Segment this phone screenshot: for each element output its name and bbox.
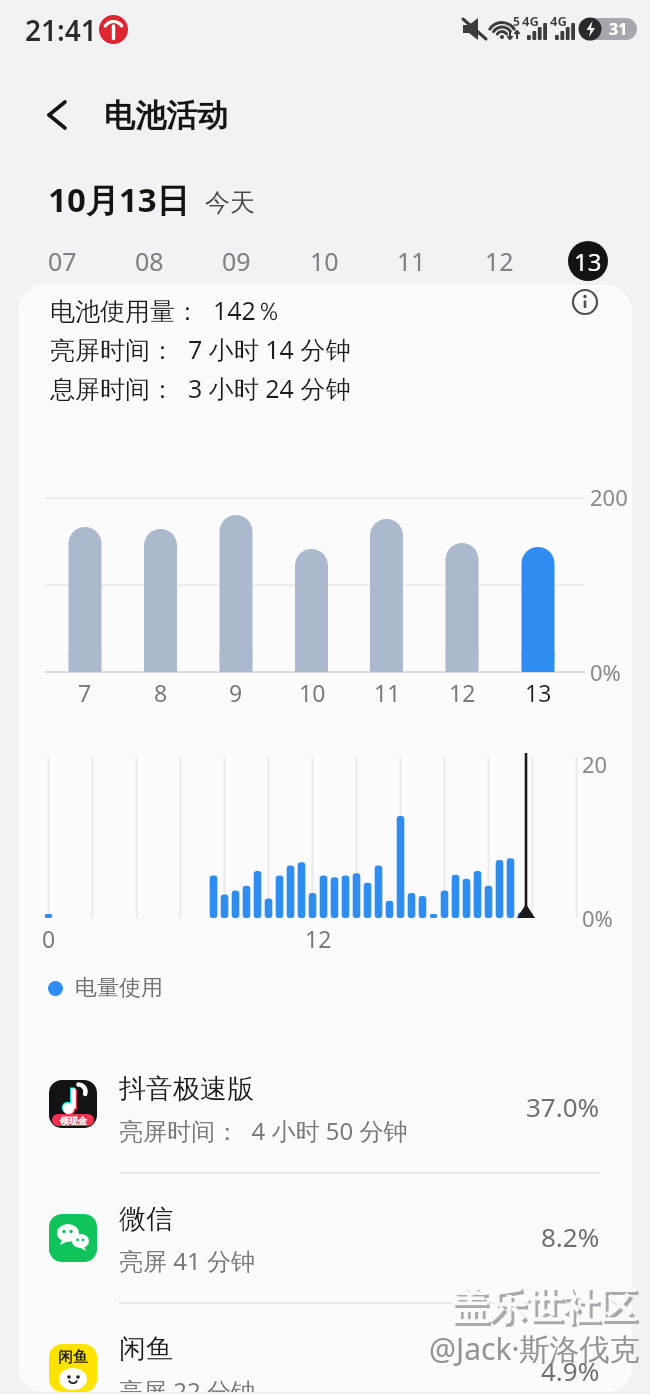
staticText: 息屏时间： 3 小时 24 分钟 <box>50 371 351 405</box>
staticText: 电池使用量： 142％ <box>50 293 281 327</box>
staticText: 电池活动 <box>104 96 228 135</box>
staticText: 0% <box>590 657 621 687</box>
staticText: 10 <box>310 244 339 278</box>
staticText: 0 <box>42 923 56 954</box>
button[interactable]: 12 <box>472 237 526 285</box>
button[interactable] <box>18 1043 632 1172</box>
staticText: 31 <box>609 18 628 40</box>
staticText: 亮屏时间： 4 小时 50 分钟 <box>119 1114 408 1147</box>
staticText: 9 <box>229 677 243 708</box>
staticText: 0% <box>582 903 613 933</box>
staticText: 电量使用 <box>75 974 163 1002</box>
staticText: 4G <box>550 12 567 30</box>
staticText: 09 <box>222 244 251 278</box>
button[interactable] <box>34 91 82 139</box>
button[interactable] <box>18 1172 632 1302</box>
staticText: 领现金 <box>60 1115 87 1126</box>
staticText: 12 <box>485 244 514 278</box>
staticText: 盖乐世社区 <box>454 1286 639 1333</box>
button[interactable]: 13 <box>568 241 608 281</box>
staticText: 37.0% <box>526 1089 600 1124</box>
staticText: 抖音极速版 <box>119 1072 254 1106</box>
staticText: 21:41 <box>25 11 97 49</box>
button[interactable]: 11 <box>384 237 438 285</box>
staticText: 亮屏时间： 7 小时 14 分钟 <box>50 332 351 366</box>
button[interactable]: 09 <box>209 237 263 285</box>
staticText: 08 <box>135 244 164 278</box>
staticText: 今天 <box>205 187 255 218</box>
staticText: 4G <box>522 12 539 30</box>
staticText: 8.2% <box>541 1219 600 1254</box>
staticText: 10 <box>299 677 326 708</box>
button[interactable]: 10 <box>297 237 351 285</box>
staticText: 亮屏 41 分钟 <box>119 1244 255 1277</box>
staticText: 盖乐世社区 <box>451 1283 636 1330</box>
staticText: 5 <box>513 13 520 29</box>
staticText: 4.9% <box>541 1353 600 1388</box>
staticText: 闲鱼 <box>119 1332 173 1366</box>
staticText: 7 <box>78 677 92 708</box>
button[interactable]: 07 <box>35 237 89 285</box>
staticText: 12 <box>305 923 332 954</box>
staticText: 200 <box>590 482 628 512</box>
staticText: 8 <box>154 677 168 708</box>
staticText: 11 <box>397 244 426 278</box>
staticText: 微信 <box>119 1202 173 1236</box>
staticText: 亮屏 22 分钟 <box>119 1374 255 1392</box>
staticText: 10月13日 <box>48 177 190 222</box>
staticText: 11 <box>374 677 401 708</box>
staticText: 13 <box>525 677 552 708</box>
staticText: 闲鱼 <box>58 1348 88 1367</box>
staticText: 13 <box>574 245 602 278</box>
staticText: 07 <box>48 244 77 278</box>
staticText: @Jack·斯洛伐克 <box>429 1328 640 1369</box>
button[interactable] <box>18 1302 632 1392</box>
staticText: 12 <box>449 677 476 708</box>
button[interactable]: 08 <box>122 237 176 285</box>
staticText: 20 <box>582 749 608 779</box>
button[interactable] <box>571 288 599 316</box>
